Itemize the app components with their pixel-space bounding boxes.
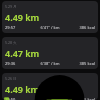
staticText: 5.29 月: [5, 4, 17, 9]
staticText: 4.49 km: [5, 83, 40, 95]
staticText: 29:50: [5, 97, 33, 100]
staticText: 385 kcal: [67, 61, 95, 66]
button[interactable]: 5.29 月: [2, 1, 98, 33]
staticText: 4.49 km: [5, 11, 40, 23]
staticText: 6'41" / km: [33, 25, 67, 30]
staticText: 386 kcal: [67, 97, 95, 100]
button[interactable]: 5.26 日: [2, 73, 98, 100]
staticText: 5.28 火: [5, 40, 17, 45]
staticText: 4.47 km: [5, 47, 40, 59]
staticText: 5.26 日: [5, 76, 17, 81]
staticText: 386 kcal: [67, 25, 95, 30]
staticText: 6'39" / km: [33, 97, 67, 100]
staticText: 6'38" / km: [33, 61, 67, 66]
staticText: 29:36: [5, 61, 33, 66]
staticText: 29:57: [5, 25, 33, 30]
button[interactable]: 5.28 火: [2, 37, 98, 69]
